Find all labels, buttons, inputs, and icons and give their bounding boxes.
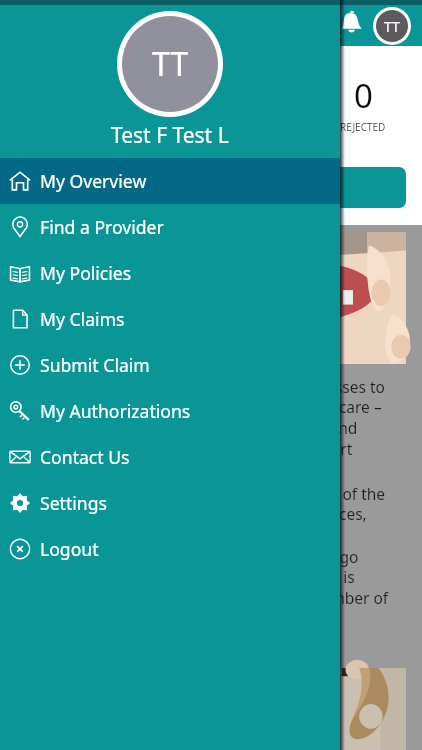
staticText: REJECTED (340, 120, 386, 134)
staticText: you and your family will always have hel… (16, 546, 389, 609)
staticText: Submit Claim (40, 353, 150, 377)
staticText: My Authorizations (40, 399, 191, 423)
staticText: My Policies (40, 261, 132, 285)
staticText: Find a Provider (40, 215, 164, 239)
button[interactable]: Submit Claim (0, 342, 340, 388)
button[interactable]: My Authorizations (0, 388, 340, 434)
staticText: With trusted partners right across the w… (16, 483, 386, 525)
staticText: My Claims (40, 307, 125, 331)
button[interactable]: VIEW ALL CLAIMS (16, 167, 406, 208)
button[interactable]: My Overview (0, 158, 340, 204)
staticText: 0 (354, 73, 373, 118)
staticText: My Overview (40, 169, 147, 193)
staticText: TT (152, 42, 189, 86)
staticText: Our ongoing commitment is in making acce… (16, 376, 385, 460)
button[interactable]: My Claims (0, 296, 340, 342)
button[interactable]: Settings (0, 480, 340, 526)
button[interactable]: Profile (376, 10, 408, 42)
button[interactable]: My Policies (0, 250, 340, 296)
staticText: 0 (203, 73, 222, 118)
staticText: Settings (40, 491, 107, 515)
staticText: TT (384, 17, 400, 36)
staticText: Test F Test L (111, 121, 229, 150)
button[interactable]: Notifications (340, 10, 364, 34)
staticText: PENDING (190, 120, 235, 134)
button[interactable]: Find a Provider (0, 204, 340, 250)
button[interactable]: Logout (0, 526, 340, 572)
button[interactable]: Contact Us (0, 434, 340, 480)
staticText: Contact Us (40, 445, 130, 469)
staticText: Logout (40, 537, 99, 561)
